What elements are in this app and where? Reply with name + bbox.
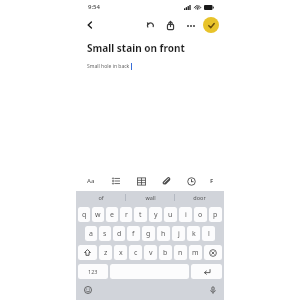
button[interactable]: s	[99, 226, 111, 241]
button[interactable]: z	[99, 245, 112, 260]
button[interactable]: d	[113, 226, 125, 241]
button[interactable]: a	[85, 226, 97, 241]
button[interactable]: Done	[203, 17, 219, 33]
staticText: j	[178, 229, 180, 239]
staticText: y	[154, 210, 158, 220]
staticText: F	[210, 177, 214, 185]
button[interactable]: q	[78, 207, 90, 222]
button[interactable]: n	[174, 245, 187, 260]
button[interactable]: Shift	[78, 245, 97, 260]
staticText: m	[192, 248, 199, 258]
button[interactable]: door	[175, 191, 224, 204]
staticText: n	[178, 248, 183, 258]
staticText: r	[125, 210, 128, 220]
button[interactable]: i	[179, 207, 192, 222]
staticText: u	[168, 210, 173, 220]
button[interactable]: r	[120, 207, 132, 222]
staticText: p	[213, 210, 218, 220]
staticText: b	[163, 248, 168, 258]
staticText: l	[208, 229, 210, 239]
staticText: h	[161, 229, 166, 239]
button[interactable]: Text format	[85, 175, 97, 187]
staticText: f	[132, 229, 135, 239]
staticText: i	[185, 210, 187, 220]
staticText: q	[82, 210, 87, 220]
button[interactable]: t	[134, 207, 147, 222]
button[interactable]: g	[142, 226, 155, 241]
button[interactable]: v	[144, 245, 157, 260]
staticText: Small hole in back	[87, 63, 130, 70]
staticText: d	[117, 229, 122, 239]
button[interactable]: More tools	[210, 175, 222, 187]
staticText: x	[119, 248, 123, 258]
button[interactable]: w	[92, 207, 104, 222]
button[interactable]: Emoji	[82, 284, 93, 295]
button[interactable]: Backspace	[204, 245, 222, 260]
button[interactable]: Voice input	[207, 284, 218, 295]
staticText: a	[89, 229, 93, 239]
staticText: of	[98, 194, 104, 201]
button[interactable]: Undo	[143, 18, 158, 33]
button[interactable]: k	[187, 226, 200, 241]
staticText: v	[149, 248, 153, 258]
staticText: door	[193, 194, 206, 201]
button[interactable]: p	[209, 207, 222, 222]
staticText: wall	[145, 194, 156, 201]
button[interactable]: Share	[163, 18, 178, 33]
staticText: 9:54	[88, 3, 100, 11]
button[interactable]: j	[172, 226, 185, 241]
staticText: e	[110, 210, 114, 220]
button[interactable]: u	[164, 207, 177, 222]
staticText: 123	[88, 268, 98, 275]
staticText: z	[104, 248, 108, 258]
button[interactable]: o	[194, 207, 207, 222]
button[interactable]: f	[127, 226, 140, 241]
button[interactable]: Back	[82, 17, 98, 33]
button[interactable]: Insert table	[135, 175, 147, 187]
button[interactable]: c	[129, 245, 142, 260]
staticText: Small stain on front	[87, 41, 185, 55]
button[interactable]: of	[76, 191, 126, 204]
button[interactable]: wall	[126, 191, 175, 204]
staticText: k	[192, 229, 196, 239]
button[interactable]: l	[202, 226, 215, 241]
button[interactable]: y	[149, 207, 162, 222]
button[interactable]: h	[157, 226, 170, 241]
staticText: Aa	[87, 177, 95, 185]
staticText: t	[139, 210, 142, 220]
button[interactable]: b	[159, 245, 172, 260]
staticText: o	[198, 210, 203, 220]
staticText: c	[134, 248, 138, 258]
staticText: g	[146, 229, 151, 239]
button[interactable]: Attach file	[160, 175, 172, 187]
button[interactable]: Insert media	[185, 175, 197, 187]
button[interactable]: Return	[191, 264, 222, 279]
button[interactable]: x	[114, 245, 127, 260]
button[interactable]: Checklist	[110, 175, 122, 187]
button[interactable]: More options	[183, 18, 198, 33]
button[interactable]: 123	[78, 264, 108, 279]
button[interactable]: e	[106, 207, 118, 222]
staticText: s	[103, 229, 107, 239]
staticText: w	[95, 210, 101, 220]
button[interactable]: m	[189, 245, 202, 260]
